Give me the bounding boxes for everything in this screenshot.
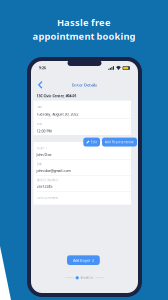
staticText: 9:26 — [39, 66, 46, 70]
staticText: john.doe@gmail.com — [36, 168, 70, 173]
staticText: Time — [36, 122, 42, 126]
staticText: appointment booking — [32, 30, 135, 42]
staticText: Add Representative — [105, 140, 134, 144]
button[interactable]: Edit — [83, 138, 100, 146]
staticText: Hassle free — [57, 16, 111, 29]
button[interactable]: Add Buyer 2 — [67, 255, 100, 265]
staticText: showit.io — [80, 276, 93, 280]
staticText: 12:00 PM — [36, 129, 51, 133]
button[interactable]: Back — [31, 79, 45, 90]
staticText: Tuesday, August 30, 2022 — [36, 112, 78, 116]
staticText: Edit — [91, 140, 97, 144]
staticText: Add Buyer 2 — [73, 257, 94, 263]
staticText: VEHICLE NUMBER — [36, 196, 58, 199]
staticText: Date — [36, 105, 42, 109]
staticText: 13C Civic Center, #04-01 — [36, 93, 76, 98]
staticText: Buyer 1 — [36, 146, 47, 150]
staticText: Mobile Number — [36, 178, 58, 182]
staticText: Enter Details — [72, 82, 97, 88]
staticText: John Doe — [36, 152, 51, 157]
staticText: +6512345 — [36, 184, 52, 189]
button[interactable]: Add Representative — [102, 138, 137, 146]
staticText: Email — [36, 162, 42, 166]
